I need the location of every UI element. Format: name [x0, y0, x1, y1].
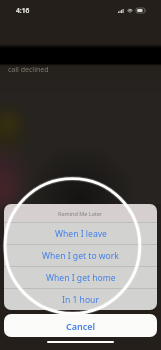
staticText: In 1 hour	[62, 294, 99, 306]
staticText: When I leave	[55, 228, 107, 240]
staticText: Remind Me Later	[58, 210, 103, 217]
staticText: Cancel	[66, 320, 96, 332]
button[interactable]: Cancel	[4, 314, 157, 337]
staticText: When I get home	[46, 272, 116, 284]
staticText: When I get to work	[42, 250, 119, 262]
button[interactable]: When I leave	[4, 223, 157, 244]
staticText: 4:16	[16, 6, 30, 15]
button[interactable]: When I get to work	[4, 245, 157, 266]
button[interactable]: When I get home	[4, 267, 157, 288]
button[interactable]: In 1 hour	[4, 289, 157, 310]
staticText: call declined	[8, 65, 49, 75]
